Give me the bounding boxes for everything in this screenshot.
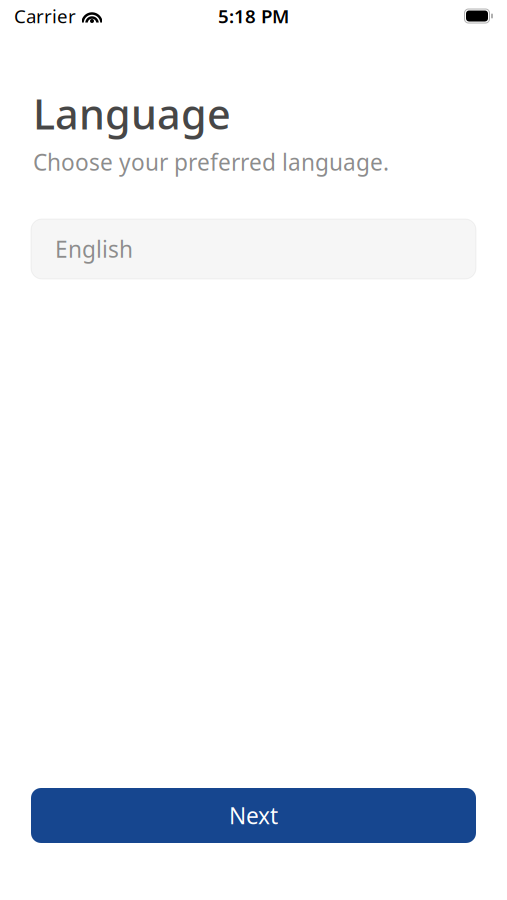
button[interactable]: Next	[31, 788, 476, 843]
staticText: 5:18 PM	[218, 4, 289, 28]
staticText: Carrier	[14, 4, 76, 28]
staticText: English	[55, 234, 133, 264]
staticText: Language	[33, 86, 231, 141]
button[interactable]: English	[31, 219, 476, 279]
staticText: Next	[229, 800, 278, 830]
staticText: Choose your preferred language.	[33, 147, 389, 177]
